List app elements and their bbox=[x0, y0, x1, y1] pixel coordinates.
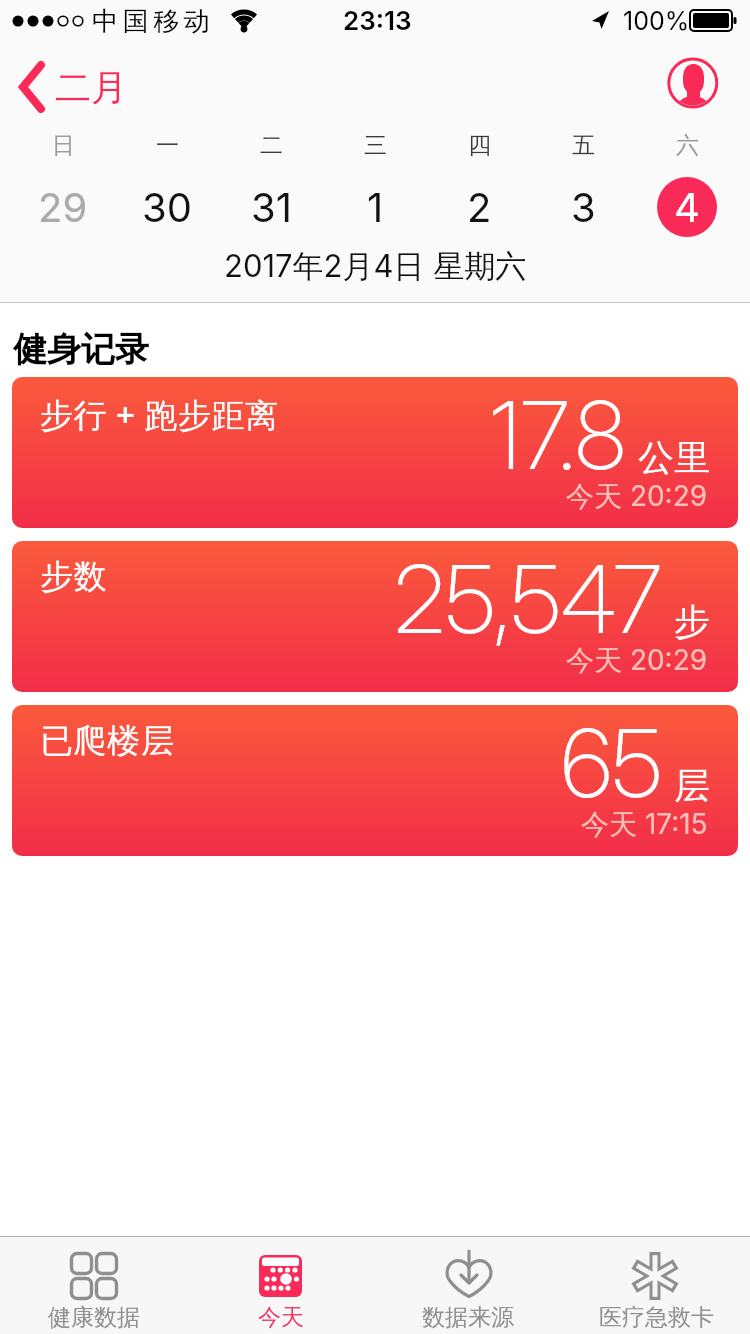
staticText: 健身记录 bbox=[13, 328, 149, 371]
button[interactable]: 步数 bbox=[12, 541, 738, 692]
staticText: 25,547 bbox=[394, 542, 662, 656]
staticText: 1 bbox=[367, 183, 384, 231]
staticText: 3 bbox=[571, 183, 596, 231]
staticText: 四 bbox=[468, 131, 491, 160]
button[interactable]: 1 bbox=[323, 177, 427, 237]
button[interactable]: 4 bbox=[635, 177, 739, 237]
button[interactable]: 二月 bbox=[18, 42, 127, 132]
staticText: 30 bbox=[142, 183, 192, 231]
staticText: 31 bbox=[251, 183, 292, 231]
staticText: 2017年2月4日 星期六 bbox=[224, 247, 527, 286]
button[interactable]: 健康数据 bbox=[0, 1236, 187, 1334]
staticText: 三 bbox=[364, 131, 387, 160]
button[interactable]: 2 bbox=[427, 177, 531, 237]
staticText: 层 bbox=[674, 763, 710, 808]
staticText: 五 bbox=[572, 131, 595, 160]
staticText: 29 bbox=[38, 183, 88, 231]
staticText: 4 bbox=[674, 183, 700, 231]
staticText: 2 bbox=[467, 183, 492, 231]
staticText: 一 bbox=[156, 131, 179, 160]
staticText: 17.8 bbox=[490, 378, 626, 492]
staticText: 中国移动 bbox=[90, 5, 212, 38]
button[interactable]: 31 bbox=[219, 177, 323, 237]
staticText: 日 bbox=[52, 131, 75, 160]
button[interactable]: 3 bbox=[531, 177, 635, 237]
staticText: 已爬楼层 bbox=[40, 720, 174, 762]
staticText: 医疗急救卡 bbox=[599, 1303, 714, 1332]
staticText: 数据来源 bbox=[422, 1303, 514, 1332]
staticText: 二 bbox=[260, 131, 283, 160]
button[interactable]: 今天 bbox=[187, 1236, 374, 1334]
staticText: 今天 20:29 bbox=[566, 479, 708, 514]
staticText: 步 bbox=[674, 599, 710, 644]
button[interactable]: 数据来源 bbox=[374, 1236, 562, 1334]
staticText: 100% bbox=[623, 6, 690, 36]
staticText: 65 bbox=[561, 706, 662, 820]
staticText: 步数 bbox=[40, 556, 107, 598]
button[interactable]: 步行 + 跑步距离 bbox=[12, 377, 738, 528]
button[interactable] bbox=[668, 58, 718, 108]
button[interactable]: 29 bbox=[11, 177, 115, 237]
button[interactable]: 医疗急救卡 bbox=[562, 1236, 750, 1334]
button[interactable]: 已爬楼层 bbox=[12, 705, 738, 856]
staticText: 二月 bbox=[55, 65, 127, 110]
staticText: 步行 + 跑步距离 bbox=[40, 392, 279, 437]
staticText: 公里 bbox=[638, 435, 710, 480]
button[interactable]: 30 bbox=[115, 177, 219, 237]
staticText: 六 bbox=[676, 131, 699, 160]
staticText: 健康数据 bbox=[48, 1303, 140, 1332]
staticText: 今天 17:15 bbox=[581, 807, 708, 842]
staticText: 今天 bbox=[258, 1303, 304, 1332]
staticText: 23:13 bbox=[343, 5, 412, 36]
staticText: 今天 20:29 bbox=[566, 643, 708, 678]
